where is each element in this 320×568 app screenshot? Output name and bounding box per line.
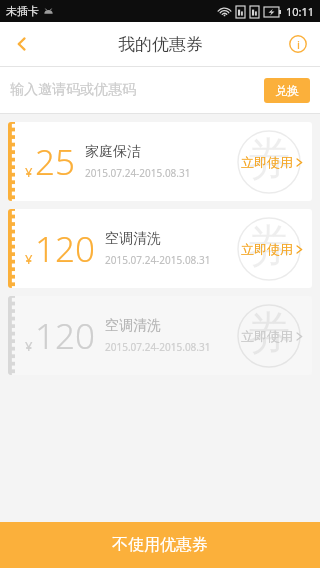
staticText: 券	[246, 218, 292, 276]
staticText: 空调清洗	[105, 317, 161, 335]
staticText: 25	[35, 138, 75, 186]
staticText: 120	[35, 225, 95, 273]
staticText: 不使用优惠券	[112, 535, 208, 555]
staticText: i	[297, 37, 300, 52]
staticText: 10:11	[286, 4, 315, 19]
button[interactable]: 券	[8, 296, 312, 375]
staticText: 我的优惠券	[118, 34, 203, 55]
staticText: 未插卡	[6, 4, 39, 18]
staticText: ¥	[25, 163, 33, 181]
staticText: 120	[35, 312, 95, 360]
button[interactable]: Back	[0, 22, 44, 66]
staticText: 兑换	[275, 83, 299, 98]
staticText: 立即使用	[241, 328, 293, 344]
staticText: 券	[246, 305, 292, 363]
staticText: 输入邀请码或优惠码	[10, 81, 136, 99]
staticText: 立即使用	[241, 241, 293, 257]
staticText: 空调清洗	[105, 230, 161, 248]
staticText: 2015.07.24-2015.08.31	[105, 340, 211, 354]
button[interactable]: 立即使用	[241, 241, 303, 257]
staticText: 2015.07.24-2015.08.31	[85, 166, 191, 180]
staticText: 2015.07.24-2015.08.31	[105, 253, 211, 267]
button[interactable]: 券	[8, 122, 312, 201]
button[interactable]: 立即使用	[241, 328, 303, 344]
button[interactable]: 不使用优惠券	[0, 522, 320, 568]
staticText: 券	[246, 131, 292, 189]
staticText: 家庭保洁	[85, 143, 141, 161]
staticText: ¥	[25, 337, 33, 355]
staticText: 立即使用	[241, 154, 293, 170]
button[interactable]: 兑换	[264, 78, 310, 103]
button[interactable]: 立即使用	[241, 154, 303, 170]
button[interactable]: 券	[8, 209, 312, 288]
button[interactable]: Info	[276, 22, 320, 66]
staticText: ¥	[25, 250, 33, 268]
